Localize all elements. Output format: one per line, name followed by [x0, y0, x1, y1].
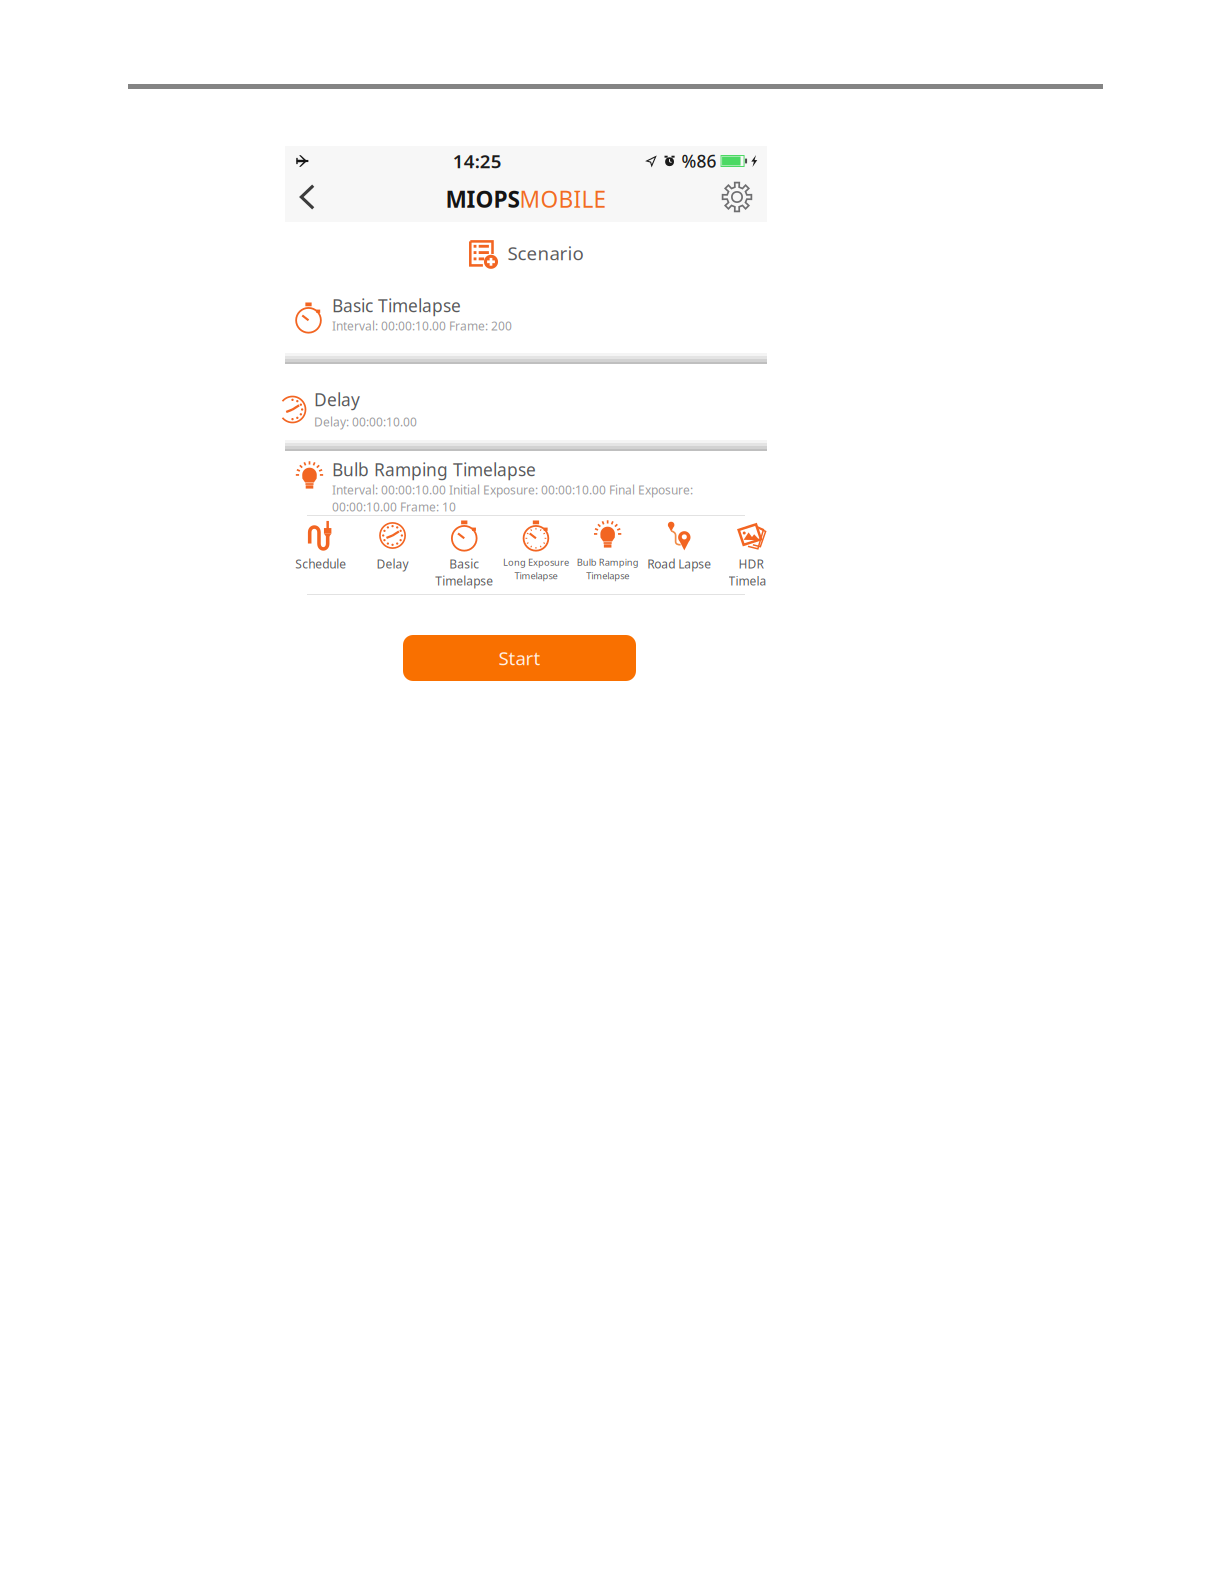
staticText: Interval: 00:00:10.00 Initial Exposure: …: [332, 482, 693, 498]
staticText: HDR: [739, 556, 764, 572]
button[interactable]: Back: [285, 176, 329, 222]
staticText: Start: [498, 646, 540, 670]
button[interactable]: Delay: [357, 519, 428, 591]
button[interactable]: Basic: [428, 519, 500, 591]
staticText: Scenario: [507, 241, 583, 265]
staticText: 00:00:10.00 Frame: 10: [332, 499, 456, 515]
staticText: Delay: 00:00:10.00: [314, 414, 417, 430]
button[interactable]: Long Exposure: [500, 519, 572, 591]
staticText: Delay: [314, 388, 360, 411]
staticText: Bulb Ramping Timelapse: [332, 458, 536, 481]
button[interactable]: Delay: [285, 388, 767, 444]
staticText: Basic: [449, 556, 479, 572]
staticText: Timelapse: [435, 573, 493, 589]
button[interactable]: Settings: [711, 176, 763, 222]
staticText: Bulb Ramping: [577, 556, 639, 568]
button[interactable]: Schedule: [285, 519, 357, 591]
staticText: MIOPS: [445, 184, 519, 214]
staticText: Schedule: [295, 556, 346, 572]
staticText: Long Exposure: [503, 556, 569, 568]
button[interactable]: Basic Timelapse: [285, 294, 767, 350]
button[interactable]: Road Lapse: [643, 519, 715, 591]
button[interactable]: HDR: [715, 519, 787, 591]
staticText: Delay: [377, 556, 409, 572]
staticText: 14:25: [453, 149, 502, 173]
button[interactable]: Bulb Ramping: [572, 519, 643, 591]
staticText: Interval: 00:00:10.00 Frame: 200: [332, 318, 512, 334]
staticText: Road Lapse: [647, 556, 711, 572]
staticText: Basic Timelapse: [332, 294, 461, 317]
staticText: Timelapse: [586, 569, 629, 582]
staticText: %86: [682, 149, 717, 172]
staticText: Timelap: [729, 573, 774, 589]
staticText: Timelapse: [514, 569, 557, 582]
staticText: MOBILE: [519, 184, 606, 214]
button[interactable]: Start: [403, 635, 636, 681]
